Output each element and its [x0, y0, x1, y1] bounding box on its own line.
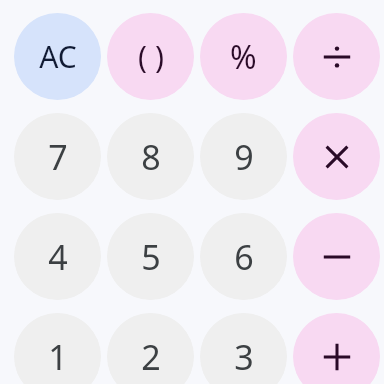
button[interactable]: 1 — [14, 313, 101, 384]
button[interactable]: 4 — [14, 213, 101, 300]
staticText: 6 — [234, 234, 254, 280]
button[interactable]: Divide — [293, 13, 380, 100]
staticText: 5 — [141, 234, 161, 280]
staticText: % — [230, 35, 257, 79]
button[interactable]: 6 — [200, 213, 287, 300]
staticText: 3 — [234, 334, 254, 380]
button[interactable]: 8 — [107, 113, 194, 200]
staticText: AC — [39, 36, 77, 77]
staticText: 4 — [48, 234, 68, 280]
staticText: 1 — [48, 334, 68, 380]
button[interactable]: Multiply — [293, 113, 380, 200]
button[interactable]: Plus — [293, 313, 380, 384]
button[interactable]: 5 — [107, 213, 194, 300]
button[interactable]: AC — [14, 13, 101, 100]
button[interactable]: 9 — [200, 113, 287, 200]
button[interactable]: Percent — [200, 13, 287, 100]
button[interactable]: Parentheses — [107, 13, 194, 100]
staticText: 9 — [234, 134, 254, 180]
staticText: 2 — [141, 334, 161, 380]
button[interactable]: 3 — [200, 313, 287, 384]
staticText: 8 — [141, 134, 161, 180]
button[interactable]: Minus — [293, 213, 380, 300]
staticText: ( ) — [138, 36, 164, 77]
button[interactable]: 2 — [107, 313, 194, 384]
button[interactable]: 7 — [14, 113, 101, 200]
staticText: 7 — [48, 134, 68, 180]
